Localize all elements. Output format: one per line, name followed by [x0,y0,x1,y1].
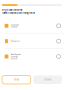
staticText: Elige una forma de identificación para f… [2,8,35,14]
staticText: Licencia de conducir [11,24,19,28]
button[interactable]: Pasaporte [0,34,64,49]
staticText: Identificación nacional o estatal [11,53,21,60]
button[interactable]: Atrás [2,75,31,84]
staticText: Pasaporte [11,40,20,42]
button[interactable]: Identificación nacional o estatal [0,49,64,64]
staticText: Continuar [44,79,52,81]
staticText: Atrás [14,79,19,81]
button[interactable]: Licencia de conducir [0,18,64,33]
button[interactable]: Continuar [33,75,62,84]
